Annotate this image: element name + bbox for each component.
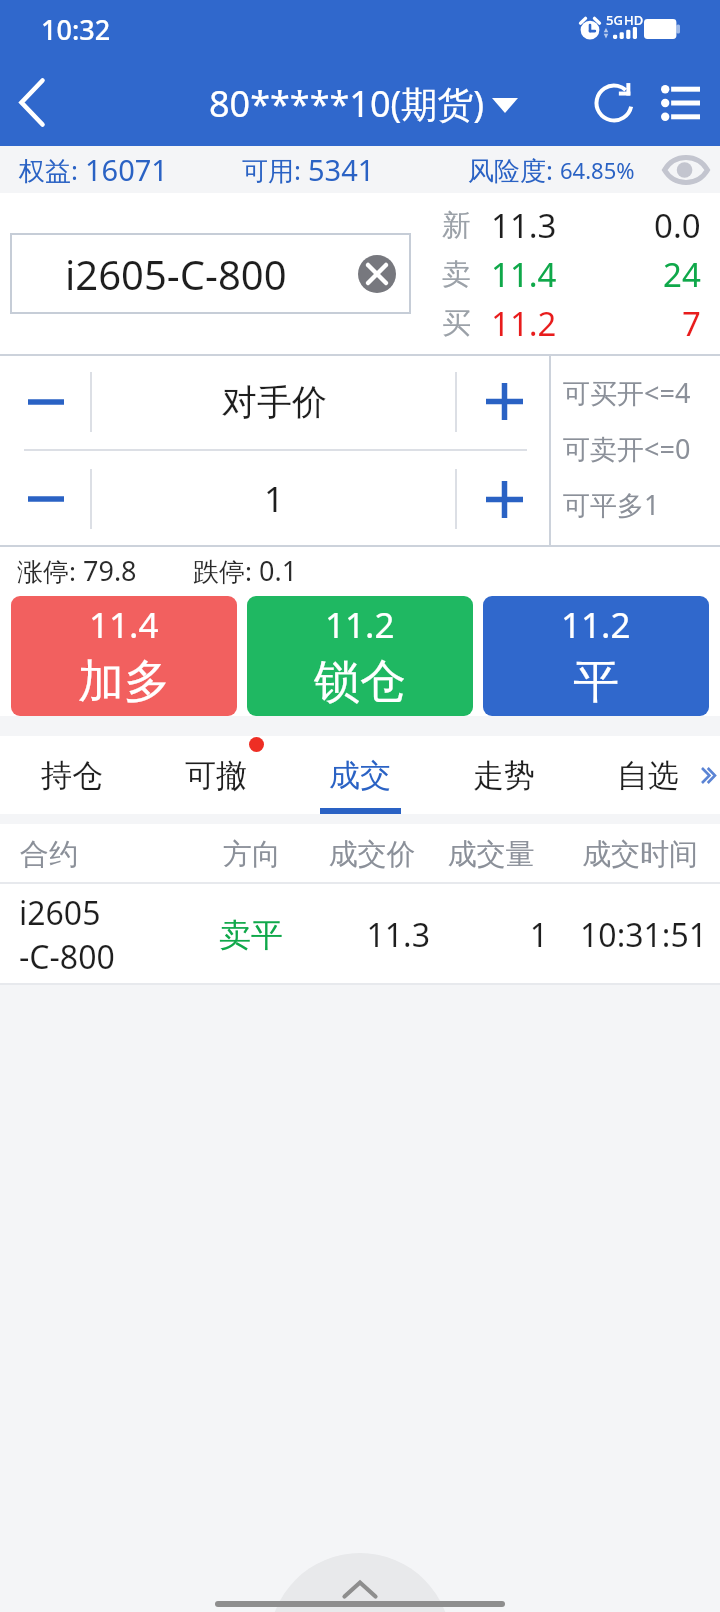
- button[interactable]: Toggle balance visibility: [651, 146, 720, 193]
- staticText: 16071: [85, 150, 168, 189]
- staticText: 11.2: [491, 301, 557, 346]
- staticText: 80*****10(期货): [209, 79, 485, 128]
- staticText: 1: [264, 475, 285, 523]
- button[interactable]: 走势: [432, 736, 576, 814]
- staticText: 可卖开<=0: [563, 430, 691, 486]
- staticText: 卖平: [191, 915, 311, 955]
- button[interactable]: 持仓: [0, 736, 144, 814]
- staticText: 加多: [78, 653, 170, 711]
- staticText: i2605-C-800: [65, 247, 287, 301]
- staticText: 5G: [606, 11, 623, 29]
- staticText: 0.1: [259, 552, 298, 589]
- staticText: 成交: [329, 756, 391, 795]
- staticText: 7: [682, 301, 701, 346]
- staticText: 可买开<=4: [563, 374, 691, 430]
- staticText: 11.2: [325, 601, 395, 649]
- button[interactable]: 11.2: [483, 596, 709, 716]
- staticText: i2605: [19, 891, 101, 935]
- button[interactable]: 成交: [288, 736, 432, 814]
- button[interactable]: Decrease: [0, 451, 91, 547]
- staticText: HD: [624, 11, 644, 29]
- staticText: 11.3: [307, 913, 430, 957]
- staticText: 新: [442, 207, 491, 244]
- staticText: 卖: [442, 256, 491, 293]
- staticText: 成交时间: [552, 836, 720, 873]
- staticText: 成交价: [302, 836, 442, 873]
- staticText: 跌停:: [193, 553, 259, 589]
- staticText: 持仓: [41, 756, 103, 795]
- staticText: 平: [573, 653, 619, 711]
- staticText: 11.2: [561, 601, 631, 649]
- button[interactable]: Refresh: [573, 60, 655, 146]
- staticText: 权益:: [19, 152, 85, 188]
- staticText: 成交量: [421, 836, 561, 873]
- staticText: 11.4: [491, 252, 557, 297]
- button[interactable]: 可撤: [144, 736, 288, 814]
- staticText: 11.4: [89, 601, 159, 649]
- staticText: 5341: [308, 150, 375, 189]
- button[interactable]: Clear contract: [358, 255, 396, 293]
- button[interactable]: 11.2: [247, 596, 473, 716]
- button[interactable]: Increase: [458, 354, 550, 449]
- button[interactable]: i2605: [0, 884, 720, 985]
- button[interactable]: 自选: [576, 736, 720, 814]
- button[interactable]: More tabs: [680, 736, 720, 814]
- staticText: 走势: [473, 756, 535, 795]
- staticText: 79.8: [83, 552, 137, 589]
- button[interactable]: Decrease: [0, 354, 91, 449]
- staticText: 自选: [617, 756, 679, 795]
- staticText: 涨停:: [17, 553, 83, 589]
- staticText: 买: [442, 305, 491, 342]
- staticText: 0.0: [654, 203, 701, 248]
- staticText: 合约: [20, 836, 78, 873]
- staticText: 可撤: [185, 756, 247, 795]
- staticText: -C-800: [19, 935, 115, 979]
- button[interactable]: 80*****10(期货): [209, 79, 518, 128]
- staticText: 对手价: [222, 380, 327, 424]
- staticText: 10:32: [41, 11, 111, 48]
- button[interactable]: 11.4: [11, 596, 237, 716]
- staticText: 锁仓: [314, 653, 406, 711]
- staticText: 24: [663, 252, 701, 297]
- button[interactable]: Back: [0, 60, 64, 146]
- staticText: 可平多1: [563, 486, 660, 523]
- staticText: 可用:: [242, 152, 308, 188]
- button[interactable]: i2605-C-800: [10, 233, 411, 314]
- staticText: 64.85%: [560, 155, 635, 185]
- staticText: 10:31:51: [539, 913, 707, 957]
- staticText: 风险度:: [468, 152, 560, 188]
- staticText: 方向: [192, 836, 312, 873]
- staticText: 1: [420, 913, 548, 957]
- staticText: 11.3: [491, 203, 557, 248]
- button[interactable]: Menu: [648, 60, 713, 146]
- button[interactable]: Increase: [458, 451, 550, 547]
